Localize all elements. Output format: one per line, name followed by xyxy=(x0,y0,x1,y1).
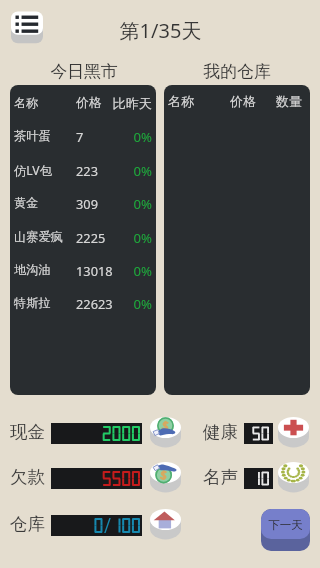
other: Health xyxy=(278,417,309,448)
staticText: 山寨爱疯 xyxy=(14,229,63,244)
staticText: 现金 xyxy=(10,421,45,443)
button[interactable]: 山寨爱疯 xyxy=(10,221,156,253)
button[interactable]: 名称 xyxy=(10,87,156,119)
staticText: 名称 xyxy=(168,94,194,110)
staticText: 欠款 xyxy=(10,466,45,488)
staticText: 价格 xyxy=(230,94,256,110)
button[interactable]: 名声 xyxy=(198,461,320,497)
staticText: 0% xyxy=(10,262,152,280)
button[interactable]: Menu xyxy=(8,5,48,45)
button[interactable]: 仓库 xyxy=(0,508,190,544)
other: Reputation xyxy=(278,462,309,493)
staticText: 309 xyxy=(76,195,98,212)
staticText: 223 xyxy=(76,162,98,179)
staticText: 13018 xyxy=(76,262,113,279)
button[interactable]: 地沟油 xyxy=(10,254,156,286)
button[interactable]: 茶叶蛋 xyxy=(10,120,156,152)
staticText: 0% xyxy=(10,162,152,180)
staticText: 我的仓库 xyxy=(164,61,310,82)
button[interactable]: 仿LV包 xyxy=(10,154,156,186)
staticText: 今日黑市 xyxy=(11,61,157,82)
staticText: 特斯拉 xyxy=(14,295,51,310)
other: Debt xyxy=(150,462,181,493)
staticText: 仿LV包 xyxy=(14,162,52,179)
button[interactable]: 健康 xyxy=(198,416,320,452)
staticText: 名声 xyxy=(203,466,238,488)
staticText: 健康 xyxy=(203,421,238,443)
staticText: 名称 xyxy=(14,95,39,110)
staticText: 第1/35天 xyxy=(60,17,261,44)
other: Cash xyxy=(150,417,181,448)
other: Storage xyxy=(150,509,181,540)
button[interactable]: 下一天 xyxy=(261,509,310,551)
staticText: 地沟油 xyxy=(14,262,51,277)
staticText: 仓库 xyxy=(10,513,45,535)
button[interactable]: 欠款 xyxy=(0,461,190,497)
staticText: 2225 xyxy=(76,229,106,246)
staticText: 下一天 xyxy=(261,518,310,532)
staticText: 0% xyxy=(10,195,152,213)
staticText: 22623 xyxy=(76,295,113,312)
button[interactable]: 现金 xyxy=(0,416,190,452)
staticText: 0% xyxy=(10,295,152,313)
button[interactable]: 特斯拉 xyxy=(10,287,156,319)
staticText: 数量 xyxy=(276,94,302,110)
button[interactable]: 黄金 xyxy=(10,187,156,219)
staticText: 0% xyxy=(10,229,152,247)
staticText: 黄金 xyxy=(14,195,39,210)
staticText: 茶叶蛋 xyxy=(14,128,51,143)
staticText: 0% xyxy=(10,128,152,146)
staticText: 7 xyxy=(76,128,84,145)
staticText: 比昨天 xyxy=(10,95,152,112)
staticText: 价格 xyxy=(76,95,102,111)
